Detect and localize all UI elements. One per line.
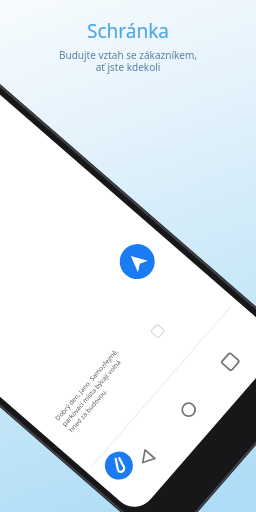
button[interactable]: Schránka promo bbox=[0, 0, 256, 512]
